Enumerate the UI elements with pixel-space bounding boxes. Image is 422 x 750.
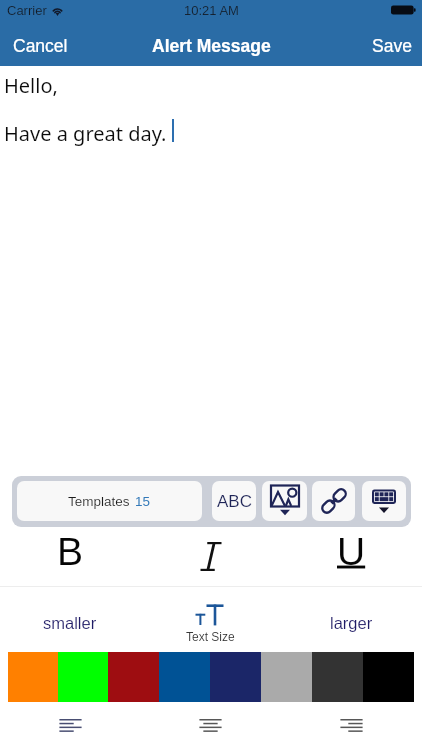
button[interactable]: Save: [358, 26, 422, 66]
button[interactable]: Align right: [281, 702, 422, 750]
button[interactable]: ABC: [212, 481, 256, 521]
button[interactable]: Insert link: [312, 481, 355, 521]
button[interactable]: Insert image: [262, 481, 307, 521]
staticText: Cancel: [13, 36, 68, 56]
staticText: larger: [330, 614, 373, 632]
staticText: ABC: [217, 492, 252, 511]
button[interactable]: Italic: [140, 530, 281, 586]
button[interactable]: Text Size: [140, 587, 281, 647]
staticText: U: [337, 530, 366, 574]
button[interactable]: Cancel: [0, 26, 82, 66]
button[interactable]: Keyboard: [362, 481, 406, 521]
staticText: Hello,: [4, 72, 58, 99]
button[interactable]: smaller: [0, 587, 140, 647]
staticText: Templates: [68, 494, 130, 509]
staticText: Alert Message: [152, 36, 271, 56]
staticText: smaller: [43, 614, 97, 632]
staticText: 10:21 AM: [184, 3, 239, 18]
staticText: 15: [135, 494, 151, 509]
staticText: Have a great day.: [4, 120, 167, 147]
staticText: Carrier: [7, 3, 47, 18]
button[interactable]: larger: [281, 587, 422, 647]
staticText: Text Size: [186, 630, 235, 643]
button[interactable]: Templates: [17, 481, 202, 521]
button[interactable]: Align center: [140, 702, 281, 750]
button[interactable]: Align left: [0, 702, 140, 750]
button[interactable]: Bold: [0, 530, 140, 586]
button[interactable]: Underline: [281, 530, 422, 586]
staticText: Save: [372, 36, 412, 56]
staticText: B: [57, 530, 84, 574]
